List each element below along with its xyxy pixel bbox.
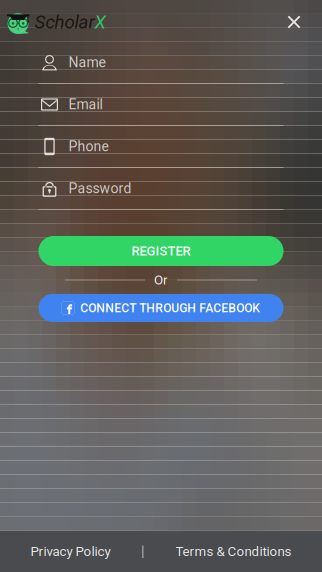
staticText: Terms & Conditions [175,544,291,559]
staticText: Scholar [35,11,95,33]
staticText: CONNECT THROUGH FACEBOOK [80,301,260,315]
staticText: X [95,11,106,33]
staticText: REGISTER [131,243,190,259]
staticText: Privacy Policy [30,544,110,559]
staticText: Password [68,180,131,197]
button[interactable]: Privacy Policy [30,544,110,559]
staticText: Name [68,54,105,71]
button[interactable]: REGISTER [38,236,283,266]
button[interactable]: Close [275,4,313,40]
button[interactable]: CONNECT THROUGH FACEBOOK [38,294,283,322]
button[interactable]: Terms & Conditions [175,544,291,559]
staticText: | [141,543,145,560]
staticText: Phone [68,138,108,155]
staticText: Email [68,96,102,113]
staticText: Or [154,272,168,288]
